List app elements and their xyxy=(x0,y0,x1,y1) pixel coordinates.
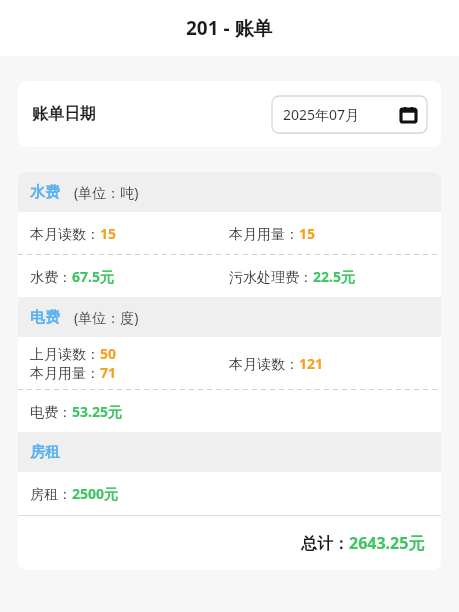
staticText: 上月读数：50 xyxy=(30,344,117,363)
staticText: 电费：53.25元 xyxy=(30,402,229,421)
staticText: (单位：度) xyxy=(74,308,139,327)
staticText: 本月用量：71 xyxy=(30,363,117,382)
staticText: 房租 xyxy=(30,443,60,462)
staticText: 本月用量：15 xyxy=(229,224,429,243)
staticText: 201 - 账单 xyxy=(186,15,273,41)
staticText: 房租：2500元 xyxy=(30,484,429,503)
staticText: 2025年07月 xyxy=(283,105,360,124)
staticText: 本月读数：121 xyxy=(229,354,324,373)
staticText: 水费：67.5元 xyxy=(30,267,229,286)
staticText: 账单日期 xyxy=(32,104,96,124)
staticText: 电费 xyxy=(30,308,60,327)
staticText: 水费 xyxy=(30,183,60,202)
other: Pick month xyxy=(401,107,416,122)
staticText: 污水处理费：22.5元 xyxy=(229,267,429,286)
staticText: 本月读数：15 xyxy=(30,224,229,243)
button[interactable]: 2025年07月 xyxy=(272,96,427,133)
staticText: (单位：吨) xyxy=(74,183,139,202)
staticText: 总计：2643.25元 xyxy=(301,532,425,554)
